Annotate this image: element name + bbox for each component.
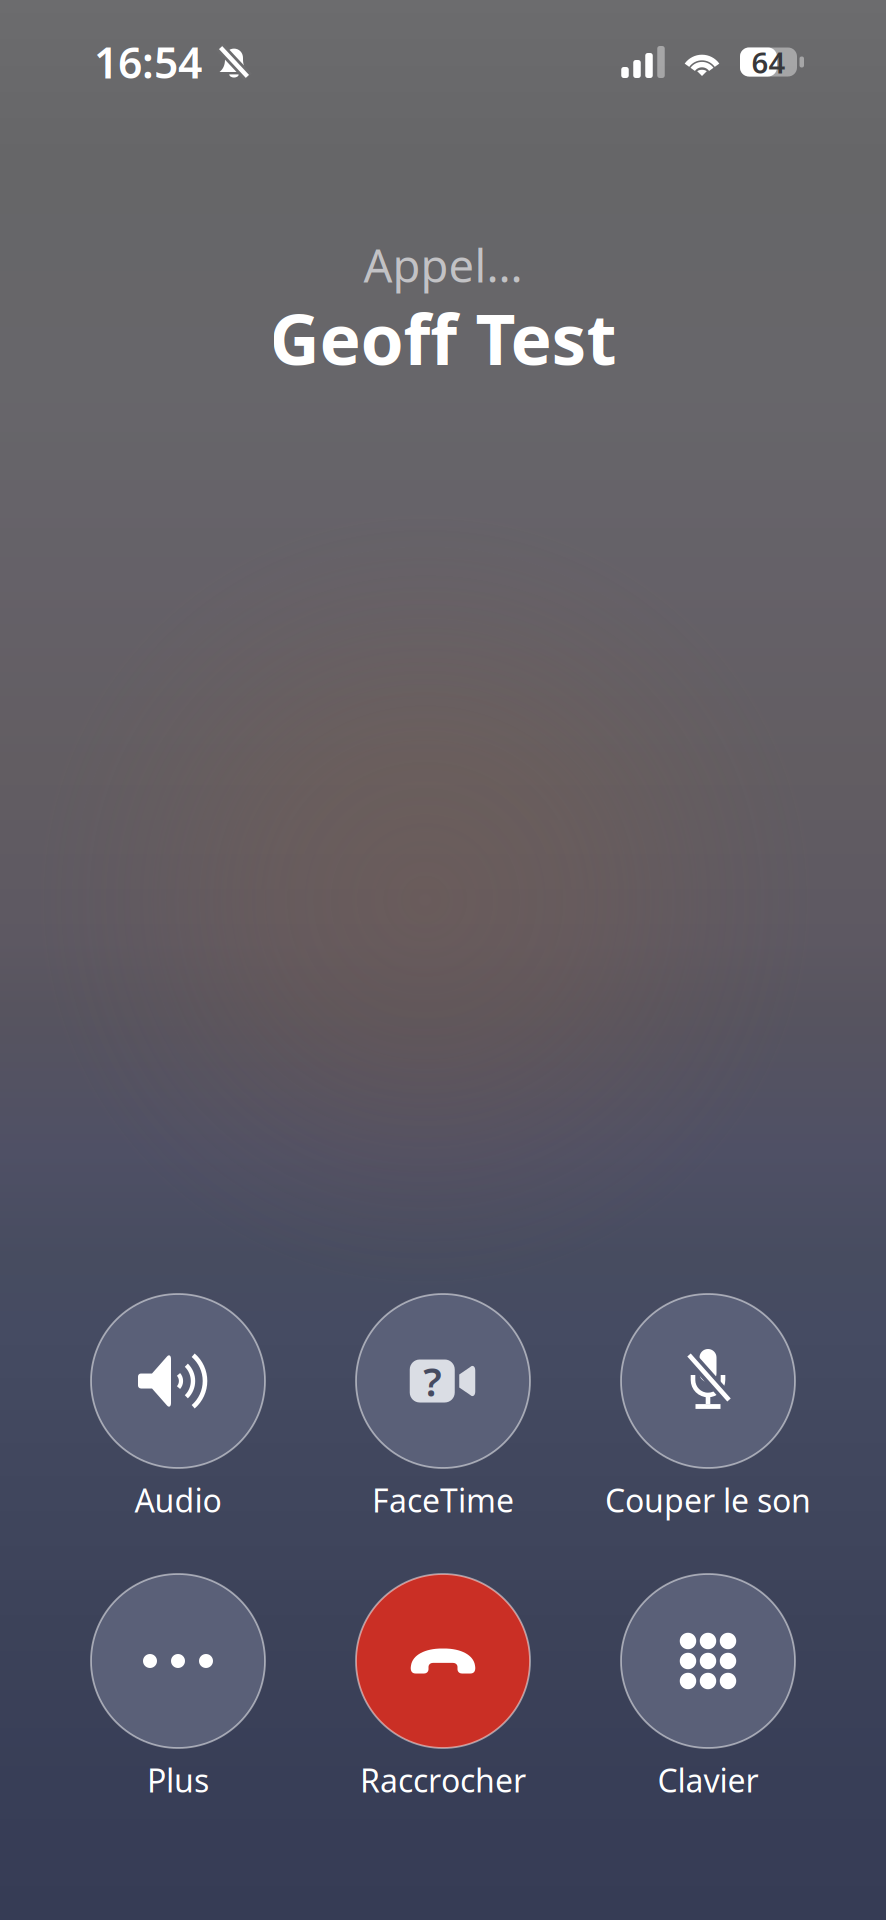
staticText: ? <box>423 1354 441 1407</box>
staticText: Clavier <box>657 1759 758 1801</box>
staticText: Raccrocher <box>360 1759 526 1801</box>
staticText: 64 <box>751 42 785 81</box>
staticText: FaceTime <box>372 1479 514 1521</box>
button[interactable]: ? <box>293 1294 593 1522</box>
staticText: Appel... <box>363 235 522 295</box>
button[interactable]: Couper le son <box>558 1294 858 1522</box>
button[interactable]: Audio <box>28 1294 328 1522</box>
staticText: 16:54 <box>94 34 202 90</box>
staticText: Audio <box>134 1479 221 1521</box>
button[interactable]: Plus <box>28 1574 328 1802</box>
staticText: Plus <box>147 1759 209 1801</box>
staticText: Geoff Test <box>269 292 616 384</box>
button[interactable]: Clavier <box>558 1574 858 1802</box>
button[interactable]: Raccrocher <box>293 1574 593 1802</box>
staticText: Couper le son <box>605 1479 811 1521</box>
